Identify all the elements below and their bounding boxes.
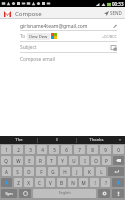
button[interactable]: Emoji [19,189,31,198]
button[interactable]: The [0,136,37,144]
button[interactable]: Z [14,178,22,187]
button[interactable]: R [36,156,45,165]
staticText: W [16,158,21,164]
staticText: E [28,158,31,164]
staticText: Dew Dew [29,34,48,40]
button[interactable]: 6 [61,145,72,154]
staticText: Y [61,158,64,164]
button[interactable]: girlsname4team@gmail.com [20,22,117,30]
staticText: Z [17,180,20,186]
button[interactable]: More suggestions [115,136,125,144]
staticText: 5 [53,147,56,153]
staticText: Sym [5,191,13,196]
button[interactable]: C [35,178,44,187]
staticText: 2 [17,147,20,153]
staticText: K [88,169,91,175]
button[interactable]: V [46,178,55,187]
staticText: D [27,169,31,175]
button[interactable]: Thanks [77,136,115,144]
staticText: Thanks [89,137,104,143]
button[interactable]: 9 [100,145,111,154]
staticText: C [38,180,41,186]
button[interactable]: Dew Dew [29,33,48,40]
staticText: J [76,169,78,175]
button[interactable]: B [57,178,66,187]
staticText: H [63,169,67,175]
button[interactable]: F [36,167,46,176]
button[interactable]: 2 [13,145,23,154]
staticText: 00:33 [112,1,124,7]
button[interactable]: Q [1,156,11,165]
button[interactable]: I [80,156,89,165]
staticText: X [27,180,30,186]
button[interactable]: H [60,167,70,176]
staticText: B [60,180,63,186]
button[interactable]: ! [90,178,99,187]
button[interactable]: I [38,136,76,144]
button[interactable]: Subject [20,42,117,52]
staticText: The [15,137,23,143]
button[interactable]: 7 [74,145,85,154]
button[interactable]: X [24,178,33,187]
button[interactable]: J [72,167,82,176]
staticText: U [72,158,76,164]
staticText: 8 [91,147,94,153]
button[interactable]: Sym [1,189,17,198]
button[interactable]: 4 [37,145,47,154]
button[interactable]: M [79,178,88,187]
staticText: girlsname4team@gmail.com [20,23,88,30]
staticText: Compose email [20,56,55,63]
staticText: Subject [20,44,37,51]
staticText: 9 [104,147,107,153]
button[interactable]: Gmail [3,9,12,18]
button[interactable]: L [96,167,106,176]
staticText: To [20,33,25,39]
button[interactable]: T [47,156,56,165]
staticText: G [51,169,55,175]
staticText: A [5,169,8,175]
button[interactable]: Y [58,156,67,165]
staticText: T [50,158,53,164]
staticText: ! [94,180,96,186]
button[interactable]: 5 [49,145,59,154]
button[interactable]: P [102,156,111,165]
button[interactable]: A [2,167,11,176]
button[interactable]: D [24,167,34,176]
staticText: 3 [29,147,32,153]
button[interactable]: 1 [1,145,11,154]
staticText: N [71,180,75,186]
button[interactable]: Shift [112,178,124,187]
staticText: SEND [110,10,122,16]
button[interactable]: 3 [25,145,35,154]
button[interactable]: Settings [98,189,110,198]
staticText: English [59,190,71,195]
button[interactable]: SEND [104,10,122,16]
button[interactable]: 0 [113,145,124,154]
staticText: M [81,180,86,186]
button[interactable]: O [91,156,100,165]
button[interactable]: S [13,167,22,176]
button[interactable]: G [48,167,58,176]
button[interactable]: Voice input [112,189,124,198]
staticText: S [16,169,19,175]
button[interactable]: Enter [108,167,124,176]
button[interactable]: K [84,167,94,176]
button[interactable]: Backspace [113,156,124,165]
button[interactable]: Compose email [20,53,117,65]
button[interactable]: E [25,156,34,165]
button[interactable]: N [68,178,77,187]
staticText: Q [4,158,8,164]
button[interactable]: To [20,31,117,41]
staticText: V [49,180,52,186]
staticText: L [100,169,103,175]
button[interactable]: Attach picture [110,44,117,51]
button[interactable]: ? [101,178,110,187]
staticText: Compose [15,10,42,18]
button[interactable]: 8 [87,145,98,154]
button[interactable]: U [69,156,78,165]
staticText: 7 [78,147,81,153]
button[interactable]: W [13,156,23,165]
button[interactable]: Space [33,189,96,198]
staticText: I [56,137,58,143]
button[interactable]: Shift [1,178,12,187]
